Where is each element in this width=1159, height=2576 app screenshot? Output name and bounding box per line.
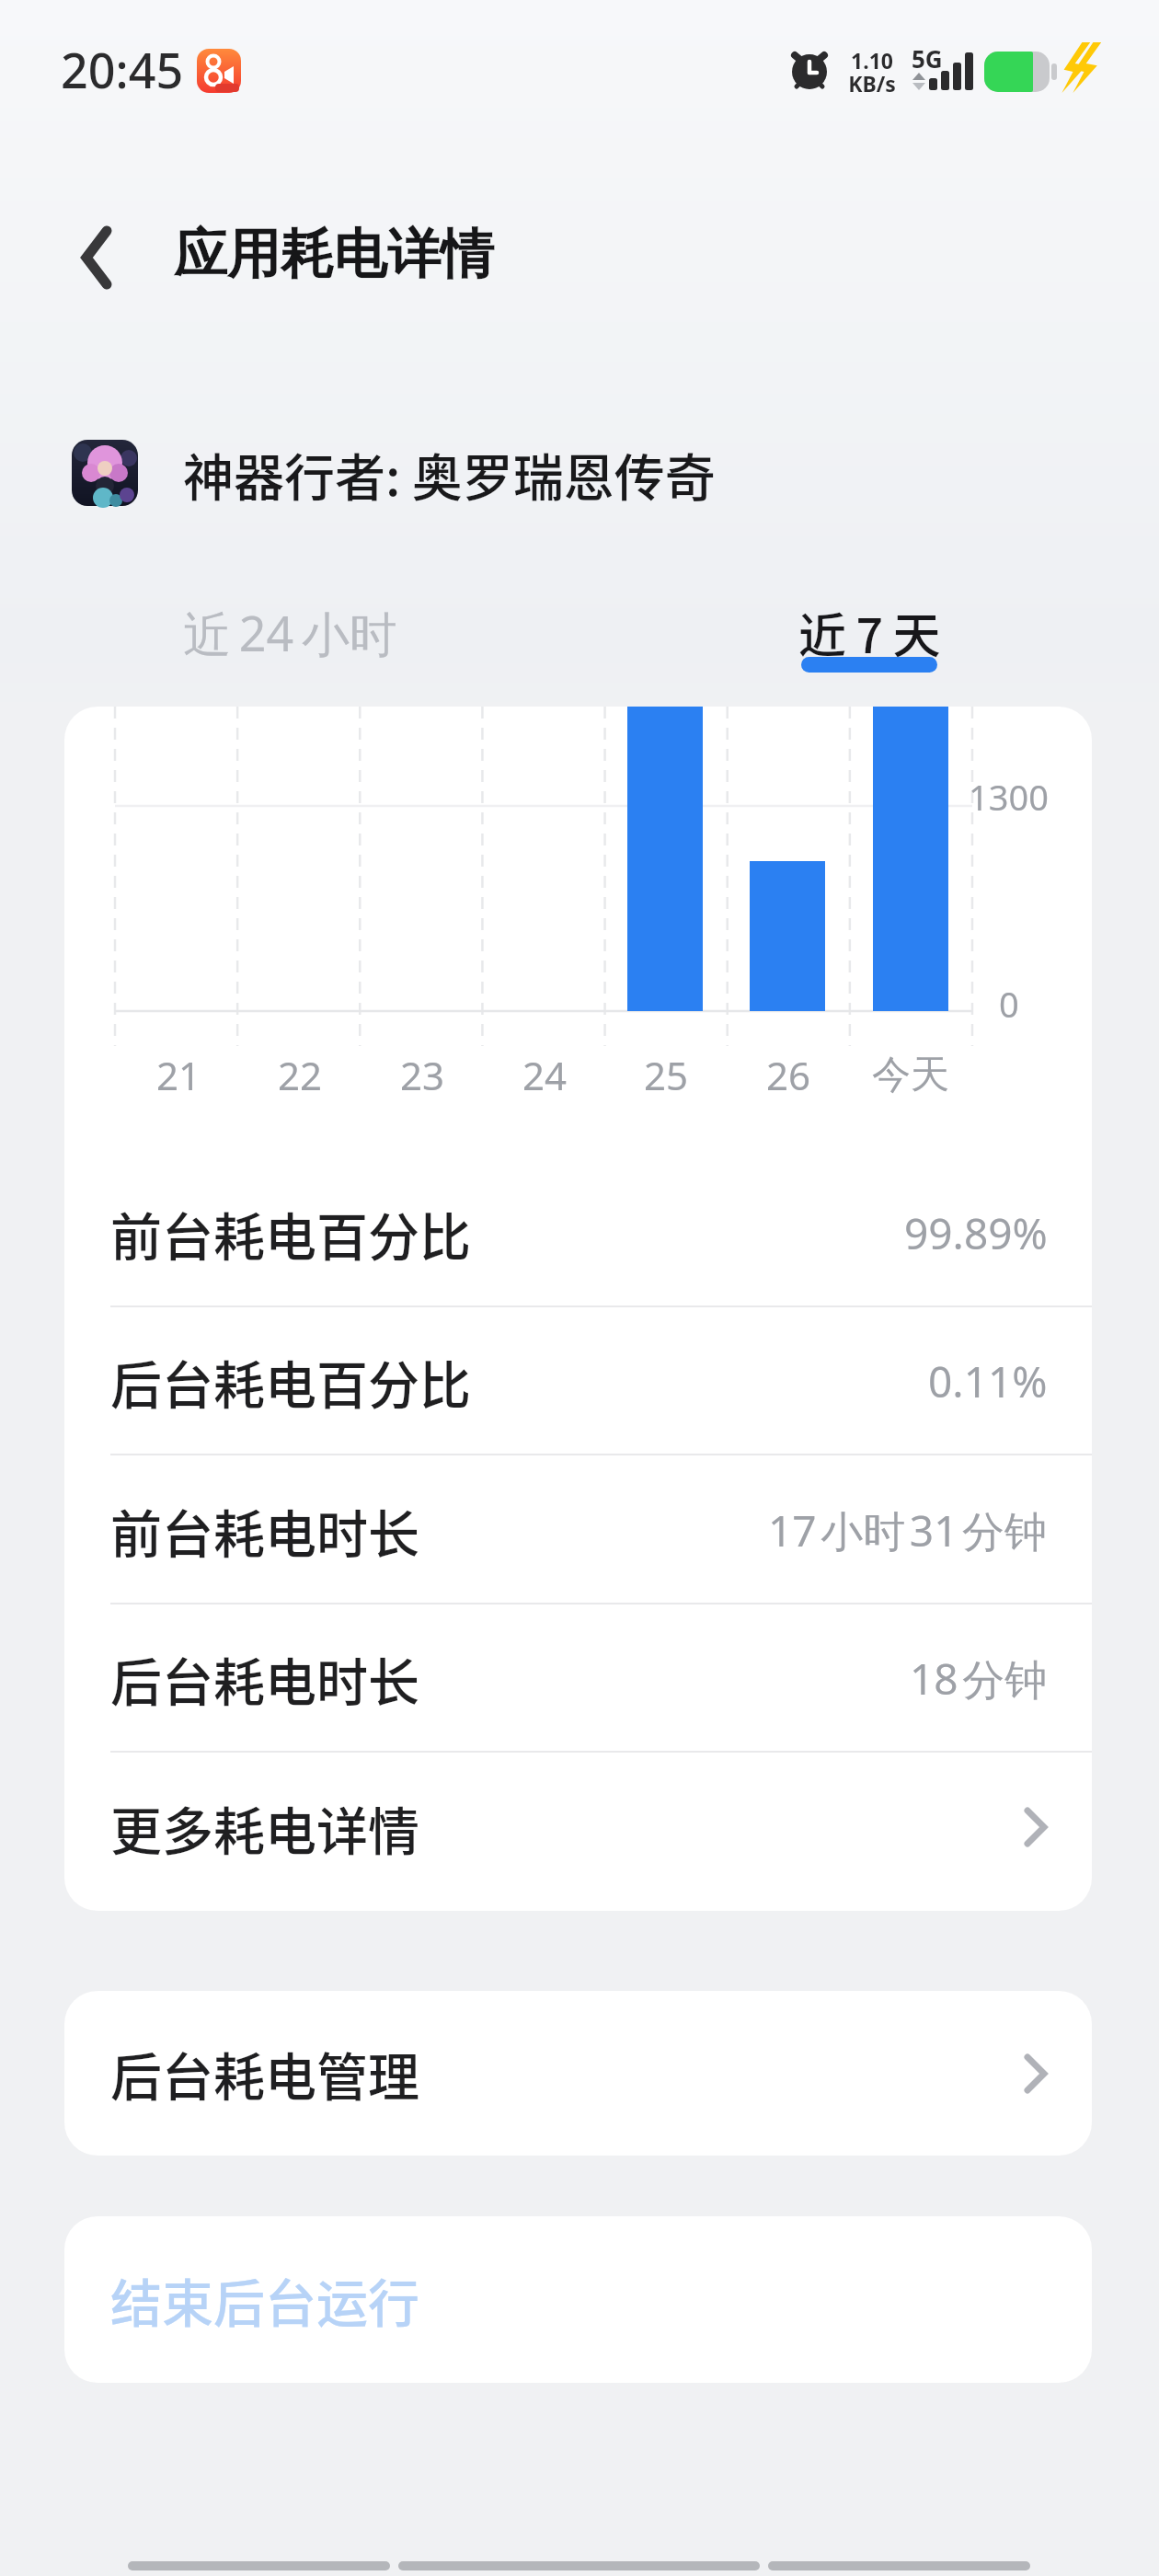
staticText: 近 7 天 bbox=[798, 598, 941, 667]
staticText: 近 24 小时 bbox=[183, 600, 397, 665]
staticText: 26 bbox=[766, 1049, 811, 1101]
staticText: 后台耗电时长 bbox=[110, 1641, 419, 1716]
button[interactable]: 前台耗电百分比 bbox=[64, 1159, 1092, 1306]
staticText: 结束后台运行 bbox=[110, 2262, 419, 2337]
staticText: 17 小时 31 分钟 bbox=[768, 1501, 1048, 1559]
staticText: 18 分钟 bbox=[910, 1650, 1048, 1708]
button[interactable]: 前台耗电时长 bbox=[64, 1456, 1092, 1604]
staticText: 5G bbox=[912, 42, 943, 75]
staticText: 前台耗电百分比 bbox=[110, 1196, 471, 1271]
staticText: 23 bbox=[400, 1049, 445, 1101]
staticText: 24 bbox=[522, 1049, 568, 1101]
button[interactable]: 结束后台运行 bbox=[64, 2216, 1092, 2383]
button[interactable]: 后台耗电时长 bbox=[64, 1604, 1092, 1752]
button[interactable]: 近 7 天 bbox=[579, 570, 1159, 694]
staticText: 今天 bbox=[872, 1051, 949, 1099]
staticText: 后台耗电管理 bbox=[110, 2036, 419, 2110]
button[interactable]: 近 24 小时 bbox=[0, 570, 579, 694]
staticText: 应用耗电详情 bbox=[174, 221, 494, 288]
staticText: 0 bbox=[999, 980, 1019, 1028]
staticText: 后台耗电百分比 bbox=[110, 1344, 471, 1419]
staticText: 1.10 KB/s bbox=[848, 46, 896, 94]
staticText: 0.11% bbox=[928, 1352, 1048, 1410]
staticText: 更多耗电详情 bbox=[110, 1790, 419, 1865]
staticText: 21 bbox=[156, 1049, 201, 1101]
button[interactable]: 更多耗电详情 bbox=[64, 1754, 1092, 1901]
staticText: 99.89% bbox=[904, 1204, 1048, 1262]
staticText: 20:45 bbox=[61, 37, 184, 102]
button[interactable]: 后台耗电百分比 bbox=[64, 1307, 1092, 1455]
button[interactable] bbox=[53, 217, 138, 298]
staticText: 25 bbox=[644, 1049, 689, 1101]
staticText: 22 bbox=[278, 1049, 323, 1101]
button[interactable]: 后台耗电管理 bbox=[64, 1991, 1092, 2156]
staticText: 1300 bbox=[969, 773, 1049, 821]
staticText: 前台耗电时长 bbox=[110, 1493, 419, 1568]
staticText: 神器行者: 奥罗瑞恩传奇 bbox=[183, 437, 716, 511]
